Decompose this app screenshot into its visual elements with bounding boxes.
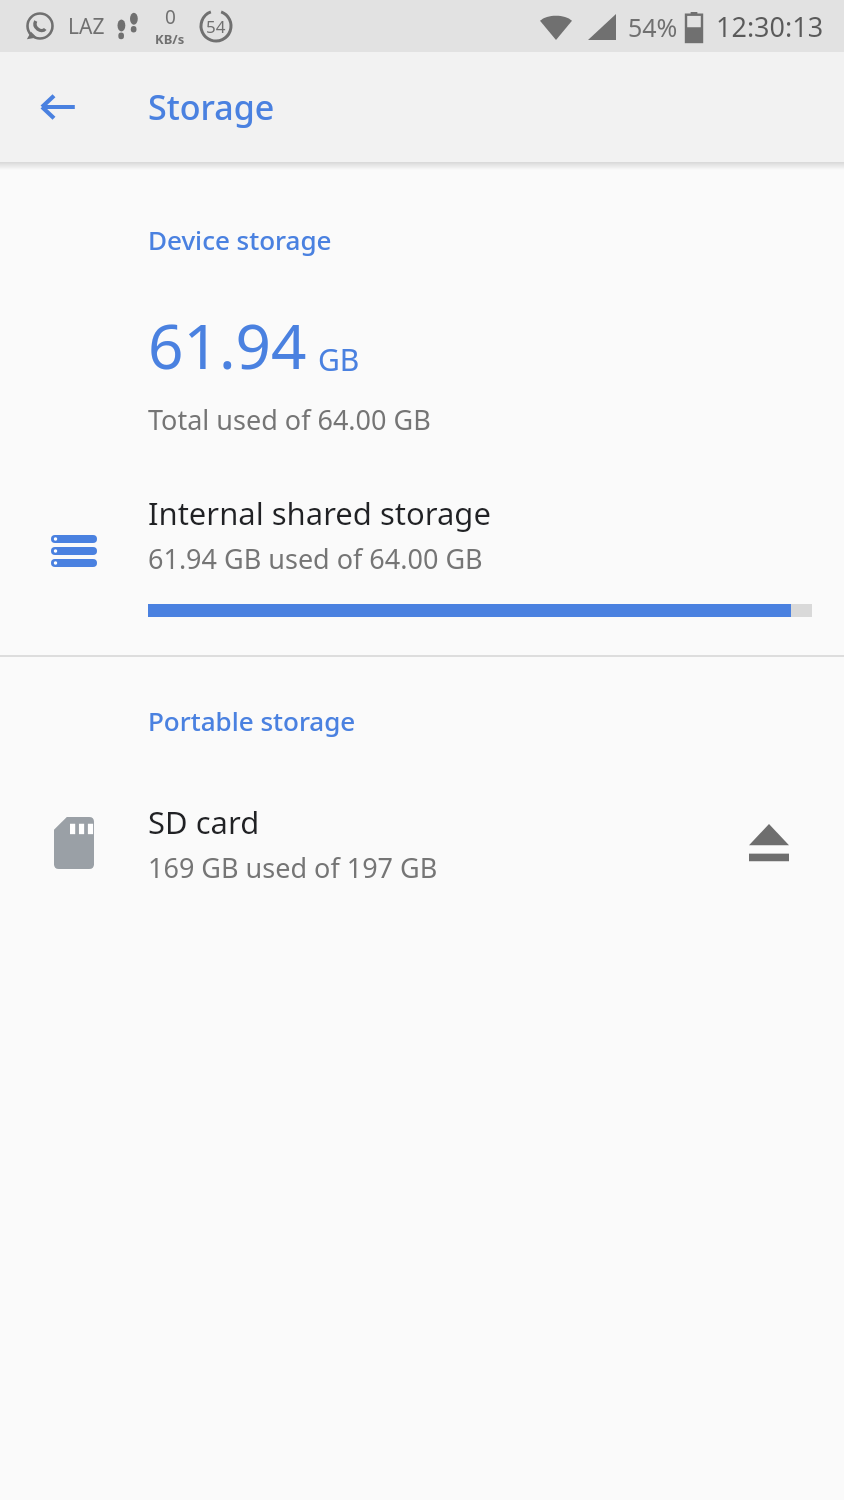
staticText: KB/s: [155, 30, 185, 48]
button[interactable]: SD card: [0, 788, 844, 898]
button[interactable]: Internal shared storage: [0, 492, 844, 617]
staticText: 54%: [628, 10, 678, 44]
staticText: Storage: [148, 84, 275, 130]
staticText: 0: [165, 4, 176, 30]
staticText: 61.94 GB used of 64.00 GB: [148, 540, 483, 577]
button[interactable]: Eject SD card: [736, 810, 802, 876]
staticText: GB: [318, 339, 360, 380]
button[interactable]: Back: [22, 71, 94, 143]
staticText: Total used of 64.00 GB: [148, 401, 431, 438]
staticText: 54: [206, 15, 226, 38]
staticText: 169 GB used of 197 GB: [148, 849, 438, 886]
staticText: 61.94: [148, 303, 307, 387]
staticText: LAZ: [68, 12, 105, 41]
staticText: Portable storage: [148, 703, 356, 738]
staticText: 12:30:13: [716, 8, 824, 45]
staticText: Device storage: [148, 222, 332, 257]
staticText: Internal shared storage: [148, 492, 491, 534]
staticText: SD card: [148, 801, 260, 843]
